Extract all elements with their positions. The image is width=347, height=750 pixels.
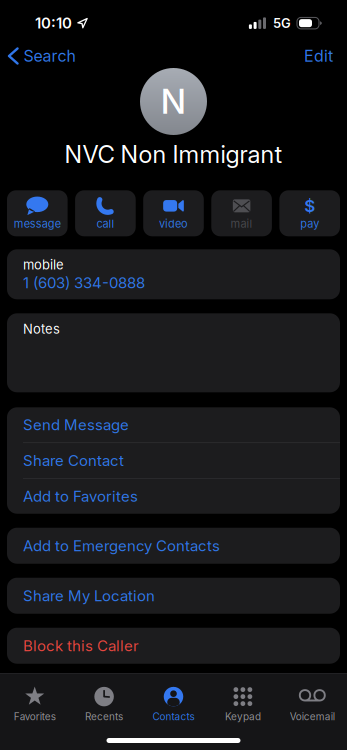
button[interactable]: Add to Favorites [7, 479, 340, 514]
staticText: call [96, 217, 114, 230]
button[interactable]: Contacts [139, 687, 208, 722]
button[interactable]: Voicemail [278, 687, 347, 722]
staticText: Voicemail [290, 711, 335, 722]
staticText: Search [23, 47, 75, 65]
button[interactable]: call [75, 190, 136, 236]
staticText: message [14, 217, 61, 230]
staticText: Keypad [225, 711, 261, 722]
button[interactable]: mail [211, 190, 272, 236]
staticText: Notes [23, 321, 60, 337]
staticText: Block this Caller [23, 637, 139, 655]
staticText: Add to Emergency Contacts [23, 537, 220, 555]
staticText: Recents [85, 711, 123, 722]
button[interactable]: Edit [304, 47, 333, 65]
staticText: mail [231, 217, 253, 230]
staticText: video [159, 217, 188, 230]
button[interactable]: Share Contact [7, 443, 340, 478]
staticText: NVC Non Immigrant [64, 140, 282, 168]
staticText: Edit [304, 47, 333, 65]
staticText: Add to Favorites [23, 487, 138, 505]
staticText: Share Contact [23, 452, 124, 469]
button[interactable]: message [7, 190, 68, 236]
staticText: mobile [23, 257, 64, 272]
staticText: Favorites [14, 711, 56, 722]
button[interactable]: Search [9, 47, 75, 65]
staticText: Send Message [23, 416, 129, 434]
staticText: 10:10 [35, 14, 72, 32]
button[interactable]: Keypad [208, 687, 278, 722]
staticText: $ [304, 196, 315, 216]
button[interactable]: Send Message [7, 407, 340, 442]
button[interactable]: Add to Emergency Contacts [7, 528, 340, 564]
staticText: 1 (603) 334-0888 [23, 274, 145, 292]
button[interactable]: video [143, 190, 204, 236]
button[interactable]: Share My Location [7, 578, 340, 614]
button[interactable]: Recents [69, 687, 139, 722]
staticText: 5G [273, 15, 291, 31]
staticText: Contacts [152, 711, 194, 722]
staticText: N [160, 81, 186, 121]
button[interactable]: mobile [7, 249, 340, 299]
button[interactable]: $ [279, 190, 340, 236]
staticText: pay [300, 217, 319, 230]
button[interactable]: Block this Caller [7, 628, 340, 664]
button[interactable]: Favorites [0, 687, 69, 722]
staticText: Share My Location [23, 587, 155, 605]
